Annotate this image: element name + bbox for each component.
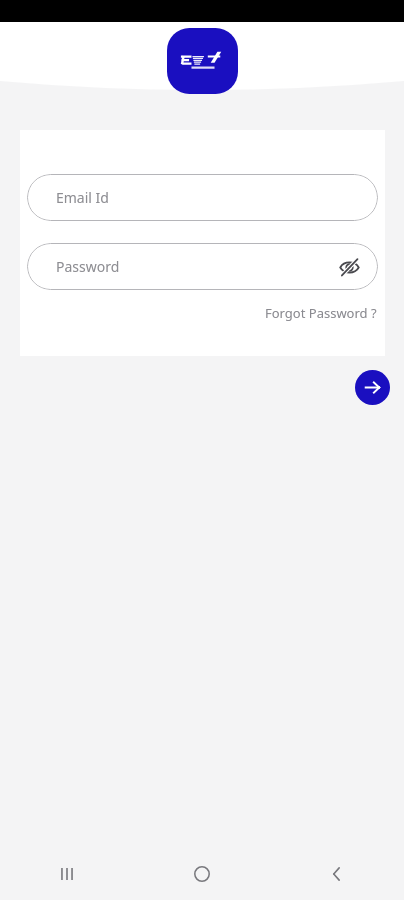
button[interactable]: Recent apps [0,848,134,900]
button[interactable]: App logo [167,28,238,94]
button[interactable]: Forgot Password ? [262,301,380,325]
button[interactable]: Back [269,848,404,900]
button[interactable]: Submit [355,370,390,405]
button[interactable]: Password [27,243,378,290]
staticText: Email Id [56,188,109,207]
button[interactable]: Show password [332,250,366,284]
staticText: Forgot Password ? [265,304,377,322]
button[interactable]: Home [134,848,269,900]
button[interactable]: Email Id [27,174,378,221]
staticText: Password [56,257,120,276]
